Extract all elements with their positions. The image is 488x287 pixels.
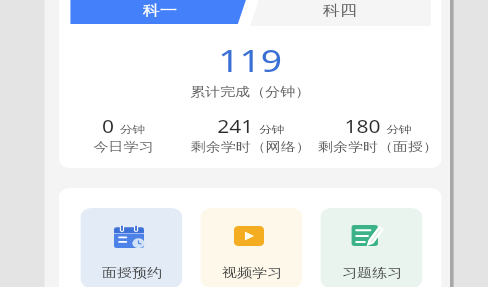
staticText: 119: [59, 39, 442, 81]
button[interactable]: 科一: [126, 0, 193, 22]
staticText: 科一: [143, 1, 178, 19]
staticText: 习题练习: [342, 265, 402, 281]
button[interactable]: 习题练习: [320, 208, 422, 287]
staticText: 分钟: [259, 123, 284, 136]
staticText: 分钟: [120, 123, 145, 136]
staticText: 241: [217, 114, 254, 138]
button[interactable]: 180: [314, 114, 442, 155]
staticText: 剩余学时（面授）: [318, 139, 438, 155]
button[interactable]: 科四: [306, 0, 373, 22]
button[interactable]: 面授预约: [80, 208, 182, 287]
staticText: 科四: [323, 1, 358, 19]
staticText: 今日学习: [94, 139, 154, 155]
staticText: 视频学习: [222, 265, 282, 281]
staticText: 累计完成（分钟）: [59, 84, 442, 100]
staticText: 面授预约: [102, 265, 162, 281]
staticText: 剩余学时（网络）: [191, 139, 311, 155]
button[interactable]: 视频学习: [200, 208, 302, 287]
button[interactable]: 0: [59, 114, 187, 155]
staticText: 0: [102, 114, 115, 138]
staticText: 分钟: [386, 123, 412, 136]
staticText: 180: [344, 114, 382, 138]
button[interactable]: 241: [187, 114, 314, 155]
